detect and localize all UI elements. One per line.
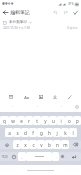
button[interactable]: a	[5, 128, 13, 137]
staticText: y	[44, 118, 47, 124]
button[interactable]: x	[21, 140, 29, 149]
staticText: ·	[12, 104, 13, 109]
button[interactable]: h	[45, 128, 53, 137]
staticText: 0 個字元	[67, 26, 78, 30]
button[interactable]	[0, 140, 13, 149]
button[interactable]	[26, 152, 52, 161]
staticText: k	[64, 130, 67, 136]
staticText: w	[11, 118, 15, 124]
staticText: m	[63, 142, 68, 148]
staticText: c	[32, 142, 35, 148]
staticText: u	[52, 118, 55, 124]
staticText: 編輯筆記	[10, 9, 30, 15]
staticText: z	[16, 142, 19, 148]
button[interactable]: Undo	[50, 7, 60, 17]
staticText: x	[24, 142, 27, 148]
button[interactable]: o	[65, 116, 73, 125]
button[interactable]: m	[61, 140, 69, 149]
button[interactable]: l	[69, 128, 77, 137]
button[interactable]: k	[61, 128, 69, 137]
staticText: q	[3, 118, 6, 124]
staticText: d	[24, 130, 27, 136]
button[interactable]: p	[73, 116, 81, 125]
button[interactable]: u	[49, 116, 57, 125]
button[interactable]: Back	[1, 8, 10, 17]
button[interactable]: Redo	[60, 7, 70, 17]
button[interactable]: g	[37, 128, 45, 137]
button[interactable]: f	[29, 128, 37, 137]
staticText: ?123	[1, 155, 8, 159]
staticText: h	[48, 130, 51, 136]
button[interactable]: c	[29, 140, 37, 149]
staticText: a	[8, 130, 11, 136]
staticText: n	[56, 142, 59, 148]
staticText: t	[36, 118, 38, 124]
staticText: .	[55, 154, 57, 160]
staticText: j	[56, 130, 58, 136]
button[interactable]: b	[45, 140, 53, 149]
staticText: p	[76, 118, 79, 124]
button[interactable]: j	[53, 128, 61, 137]
staticText: b	[48, 142, 51, 148]
staticText: ·	[37, 104, 38, 109]
button[interactable]: s	[13, 128, 21, 137]
button[interactable]: Download	[51, 93, 59, 101]
button[interactable]: ?123	[0, 152, 9, 161]
staticText: 未分類筆記	[9, 20, 27, 25]
button[interactable]	[9, 152, 18, 161]
button[interactable]: Save	[70, 7, 80, 17]
staticText: e	[20, 118, 23, 124]
button[interactable]: n	[53, 140, 61, 149]
button[interactable]: y	[41, 116, 49, 125]
staticText: v	[40, 142, 43, 148]
staticText: g	[40, 130, 43, 136]
button[interactable]: .	[52, 152, 59, 161]
button[interactable]: Keyboard settings	[73, 101, 81, 112]
button[interactable]: w	[9, 116, 17, 125]
button[interactable]	[59, 152, 66, 161]
staticText: s	[16, 130, 19, 136]
button[interactable]: Image	[37, 93, 45, 101]
button[interactable]: z	[13, 140, 21, 149]
staticText: Aa	[24, 95, 29, 100]
button[interactable]: Font	[22, 93, 30, 101]
button[interactable]: ,	[18, 152, 26, 161]
button[interactable]: d	[21, 128, 29, 137]
button[interactable]	[69, 140, 81, 149]
button[interactable]: e	[17, 116, 25, 125]
button[interactable]: q	[0, 116, 9, 125]
button[interactable]: r	[25, 116, 33, 125]
staticText: 2021/11/24 下午 7:38	[3, 26, 30, 30]
staticText: ·	[61, 104, 62, 109]
staticText: r	[28, 118, 30, 124]
button[interactable]: Draw	[66, 93, 74, 101]
staticText: 81%	[68, 2, 74, 6]
button[interactable]: v	[37, 140, 45, 149]
staticText: f	[32, 130, 34, 136]
button[interactable]	[66, 152, 81, 161]
button[interactable]: Text box	[7, 93, 15, 101]
button[interactable]: i	[57, 116, 65, 125]
staticText: l	[72, 130, 74, 136]
staticText: ,	[21, 154, 23, 159]
staticText: i	[60, 118, 62, 124]
button[interactable]: t	[33, 116, 41, 125]
staticText: o	[68, 118, 71, 124]
